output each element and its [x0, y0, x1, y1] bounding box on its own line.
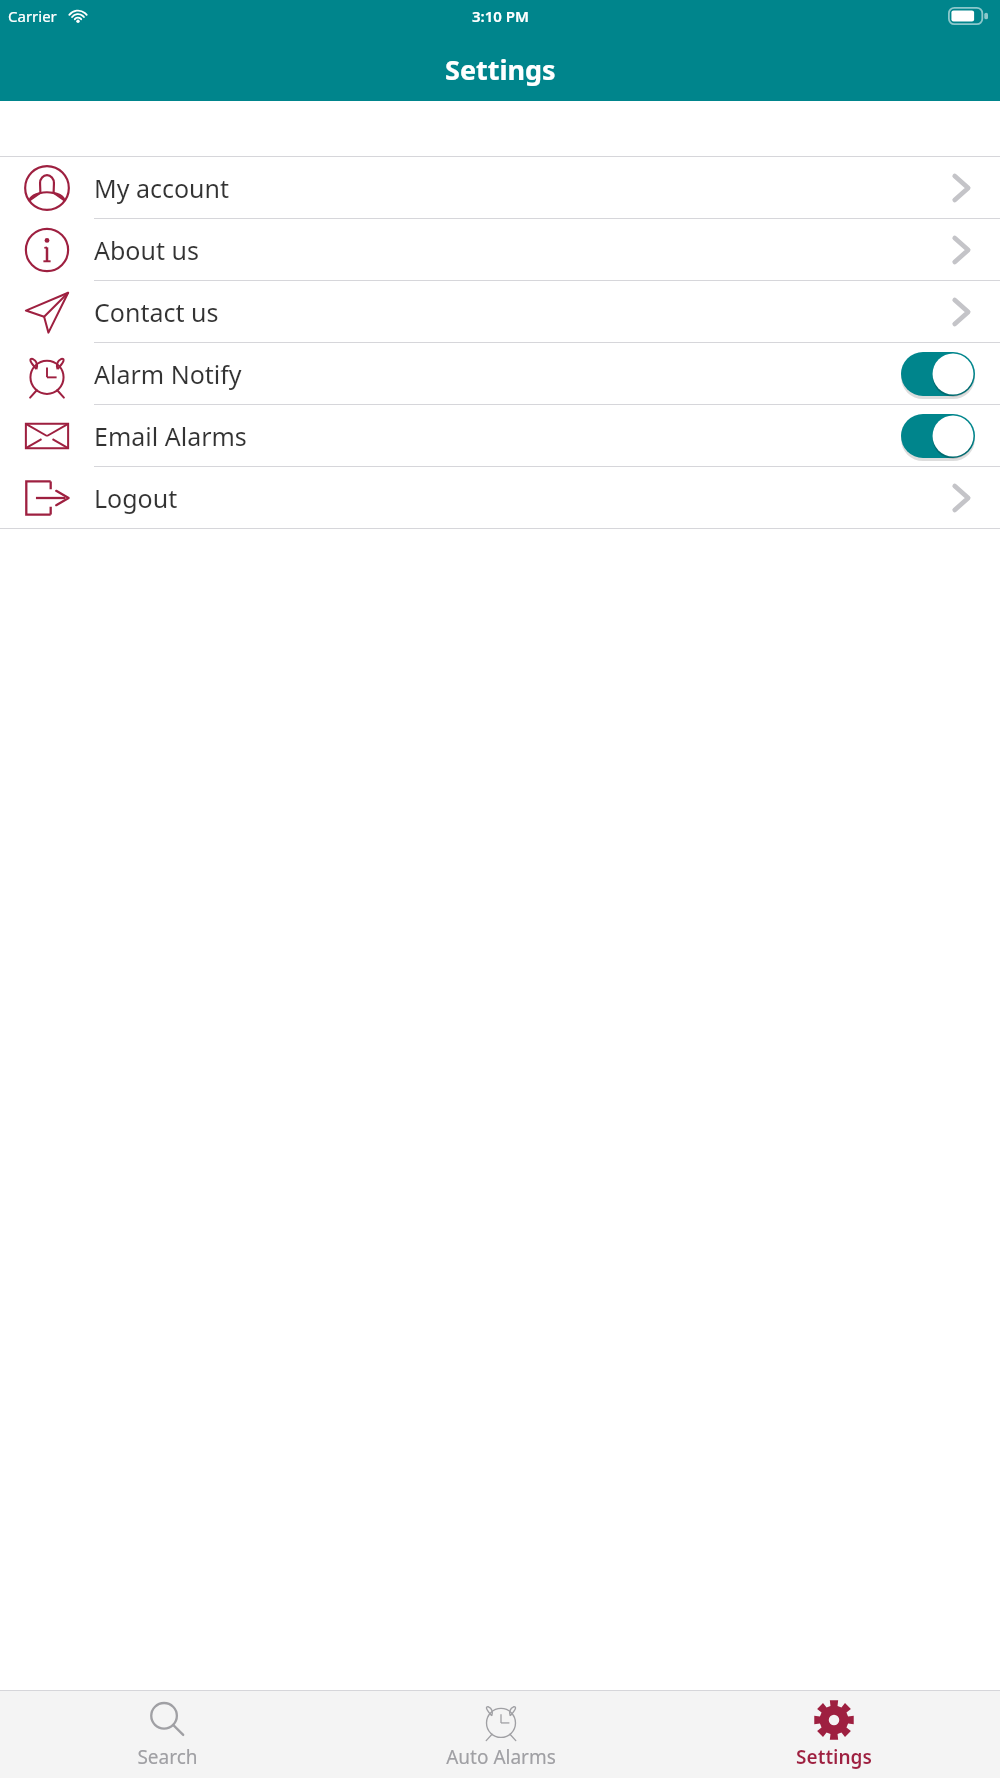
other: Alarm Notify	[901, 352, 975, 396]
staticText: 3:10 PM	[472, 6, 529, 26]
staticText: My account	[94, 171, 952, 205]
staticText: Carrier	[8, 6, 57, 26]
staticText: Contact us	[94, 295, 952, 329]
button[interactable]: Alarm Notify	[0, 343, 1000, 404]
button[interactable]: About us	[0, 219, 1000, 280]
button[interactable]: Email Alarms	[0, 405, 1000, 466]
other: Email Alarms	[901, 414, 975, 458]
staticText: Email Alarms	[94, 419, 901, 453]
button[interactable]: Contact us	[0, 281, 1000, 342]
staticText: Settings	[445, 51, 556, 88]
staticText: Settings	[796, 1744, 872, 1770]
staticText: Search	[137, 1744, 198, 1770]
staticText: Auto Alarms	[446, 1744, 556, 1770]
staticText: Logout	[94, 481, 952, 515]
button[interactable]: Auto Alarms	[334, 1691, 667, 1778]
button[interactable]: Logout	[0, 467, 1000, 528]
button[interactable]: Search	[0, 1691, 334, 1778]
staticText: About us	[94, 233, 952, 267]
button[interactable]: Settings	[667, 1691, 1000, 1778]
staticText: Alarm Notify	[94, 357, 901, 391]
button[interactable]: My account	[0, 157, 1000, 218]
